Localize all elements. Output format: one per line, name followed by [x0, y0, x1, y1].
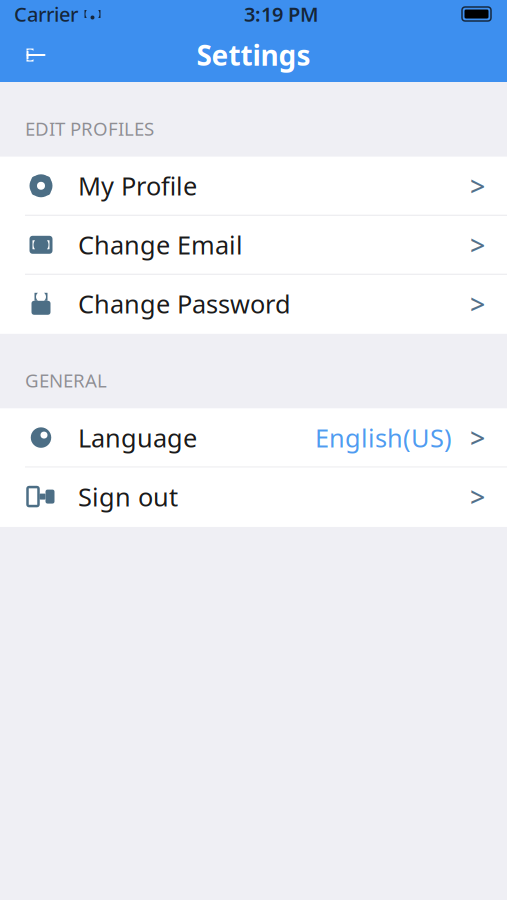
button[interactable]: Change Email [0, 216, 507, 275]
staticText: 3:19 PM [244, 1, 319, 27]
button[interactable]: My Profile [0, 157, 507, 216]
staticText: Change Email [78, 228, 243, 262]
staticText: English(US) [315, 421, 452, 454]
staticText: Language [78, 421, 197, 454]
staticText: Settings [196, 36, 310, 74]
staticText: > [470, 420, 485, 455]
button[interactable]: Back [14, 33, 58, 77]
staticText: My Profile [78, 169, 197, 203]
button[interactable]: Sign out [0, 468, 507, 527]
staticText: > [470, 479, 485, 514]
button[interactable]: Change Password [0, 275, 507, 334]
staticText: > [470, 168, 485, 203]
staticText: > [470, 227, 485, 262]
button[interactable]: Language [0, 409, 507, 468]
staticText: Carrier [14, 1, 78, 27]
staticText: > [470, 286, 485, 321]
staticText: Sign out [78, 480, 178, 513]
staticText: GENERAL [25, 368, 107, 393]
staticText: EDIT PROFILES [25, 116, 154, 141]
staticText: Change Password [78, 287, 291, 321]
